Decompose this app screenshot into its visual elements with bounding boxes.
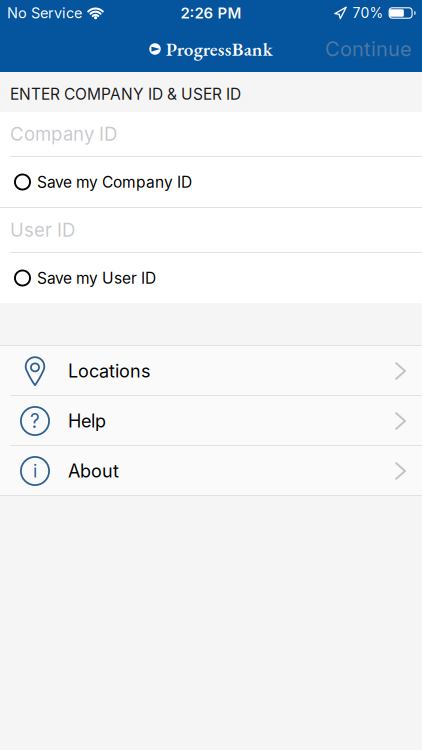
staticText: ProgressBank bbox=[166, 36, 273, 61]
button[interactable]: i bbox=[0, 446, 422, 496]
staticText: ? bbox=[30, 410, 40, 432]
staticText: Continue bbox=[325, 37, 412, 61]
staticText: About bbox=[68, 460, 119, 482]
button[interactable]: Company ID bbox=[0, 112, 422, 156]
staticText: i bbox=[33, 460, 37, 482]
staticText: Help bbox=[68, 410, 106, 432]
button[interactable]: Continue bbox=[325, 31, 422, 67]
button[interactable]: Save my Company ID bbox=[0, 157, 422, 207]
staticText: Save my Company ID bbox=[37, 173, 192, 191]
button[interactable]: User ID bbox=[0, 208, 422, 252]
button[interactable]: Save my User ID bbox=[0, 253, 422, 303]
staticText: User ID bbox=[10, 219, 75, 241]
staticText: Save my User ID bbox=[37, 269, 156, 287]
staticText: Company ID bbox=[10, 123, 117, 145]
staticText: No Service bbox=[7, 4, 82, 22]
staticText: 2:26 PM bbox=[180, 4, 241, 22]
staticText: Locations bbox=[68, 360, 151, 382]
staticText: ENTER COMPANY ID & USER ID bbox=[10, 85, 241, 103]
staticText: 70% bbox=[353, 4, 384, 21]
button[interactable]: Locations bbox=[0, 346, 422, 396]
button[interactable]: ? bbox=[0, 396, 422, 446]
